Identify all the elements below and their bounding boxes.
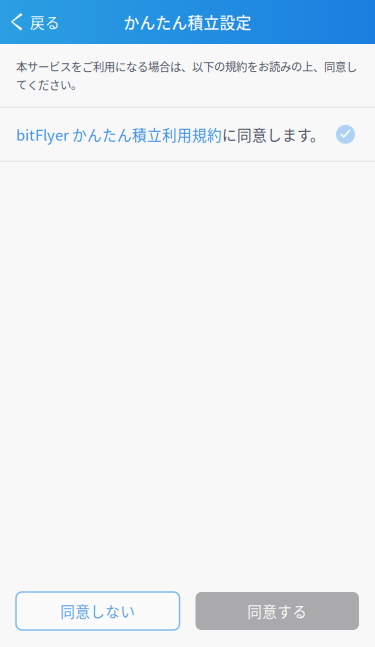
staticText: かんたん積立設定 [123, 11, 251, 33]
staticText: 同意しない [60, 600, 135, 621]
staticText: bitFlyer かんたん積立利用規約 [16, 124, 222, 145]
button[interactable]: bitFlyer かんたん積立利用規約 [0, 108, 375, 161]
button[interactable]: 同意する [195, 592, 359, 630]
staticText: 本サービスをご利用になる場合は、以下の規約をお読みの上、同意してください。 [16, 58, 357, 93]
button[interactable]: 戻る [0, 0, 70, 44]
staticText: 同意する [247, 600, 307, 621]
button[interactable]: 同意しない [16, 592, 179, 630]
staticText: 戻る [30, 11, 60, 32]
staticText: に同意します。 [222, 124, 325, 145]
